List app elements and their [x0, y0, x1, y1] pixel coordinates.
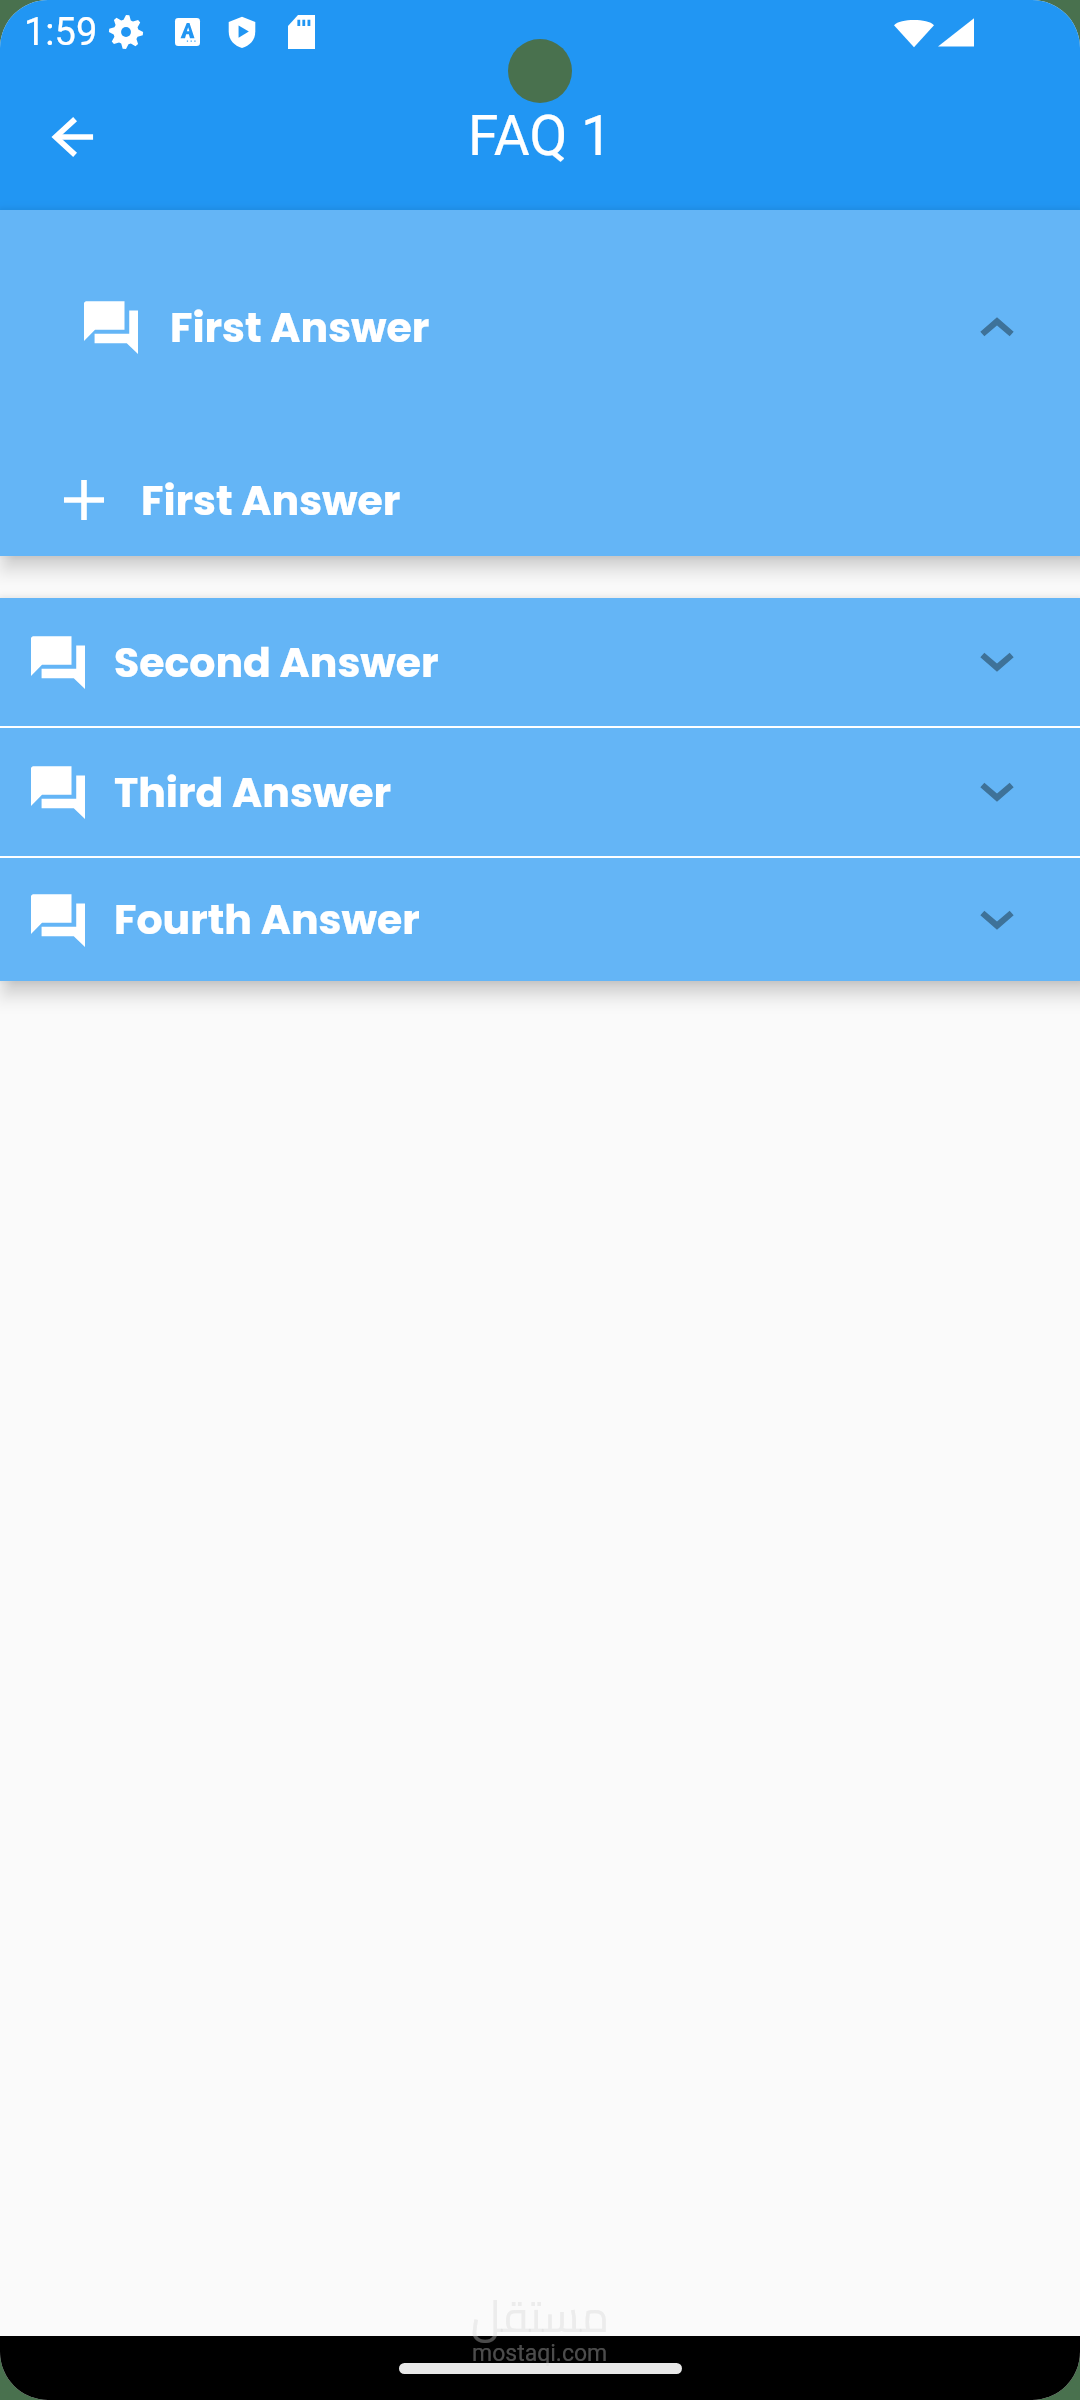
button[interactable]: Back — [30, 93, 118, 181]
button[interactable]: Collapse — [974, 304, 1020, 350]
staticText: FAQ 1 — [468, 104, 612, 168]
button[interactable]: Expand — [974, 897, 1020, 943]
button[interactable]: Second Answer — [0, 598, 1080, 726]
button[interactable]: Fourth Answer — [0, 858, 1080, 981]
staticText: Second Answer — [114, 634, 439, 691]
staticText: Fourth Answer — [114, 891, 420, 948]
staticText: mostaqi.com — [472, 2340, 608, 2367]
button[interactable]: First Answer — [0, 444, 1080, 556]
staticText: First Answer — [170, 299, 430, 356]
staticText: First Answer — [141, 472, 401, 529]
button[interactable]: Third Answer — [0, 728, 1080, 856]
button[interactable]: Expand — [974, 769, 1020, 815]
staticText: Third Answer — [114, 764, 392, 821]
button[interactable]: First Answer — [0, 210, 1080, 444]
staticText: مستقل — [471, 2275, 609, 2357]
staticText: 1:59 — [24, 10, 98, 55]
button[interactable]: Expand — [974, 639, 1020, 685]
